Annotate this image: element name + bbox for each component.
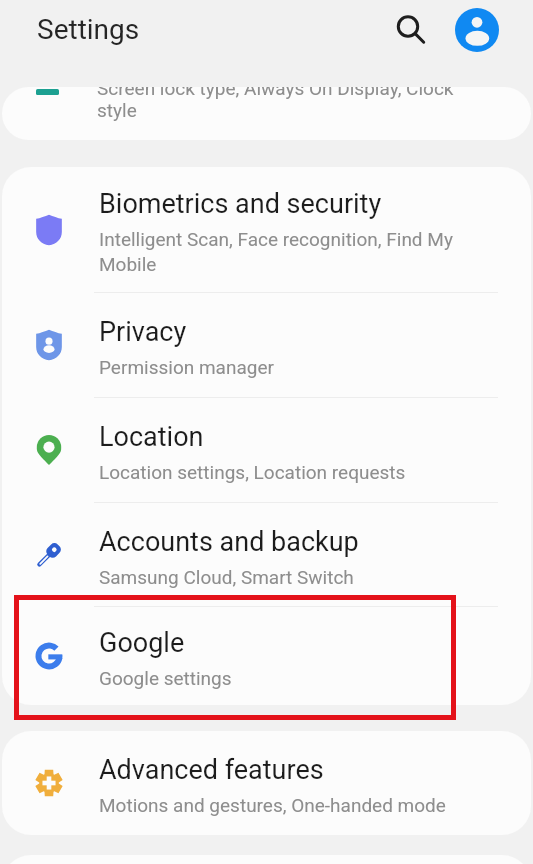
staticText: Location settings, Location requests — [99, 461, 406, 483]
button[interactable]: Screen lock type, Always On Display, Clo… — [0, 47, 533, 122]
staticText: Accounts and backup — [99, 526, 359, 558]
staticText: Screen lock type, Always On Display, Clo… — [97, 77, 469, 121]
button[interactable]: Account — [451, 4, 503, 56]
button[interactable]: Location — [2, 398, 531, 502]
staticText: Location — [99, 421, 204, 453]
button[interactable]: Search — [383, 2, 435, 54]
staticText: Advanced features — [99, 754, 324, 786]
staticText: Google settings — [99, 667, 232, 689]
staticText: Samsung Cloud, Smart Switch — [99, 566, 354, 588]
button[interactable]: Privacy — [2, 293, 531, 397]
staticText: Privacy — [99, 316, 187, 348]
staticText: Mobile — [99, 253, 157, 275]
staticText: Motions and gestures, One-handed mode — [99, 794, 446, 816]
button[interactable]: Google — [2, 607, 531, 705]
staticText: Settings — [37, 13, 140, 46]
staticText: Biometrics and security — [99, 188, 382, 220]
staticText: Permission manager — [99, 356, 274, 378]
staticText: Intelligent Scan, Face recognition, Find… — [99, 228, 453, 250]
button[interactable]: Accounts and backup — [2, 503, 531, 606]
button[interactable]: Biometrics and security — [2, 167, 531, 292]
button[interactable]: Advanced features — [2, 731, 531, 835]
staticText: Google — [99, 627, 185, 659]
